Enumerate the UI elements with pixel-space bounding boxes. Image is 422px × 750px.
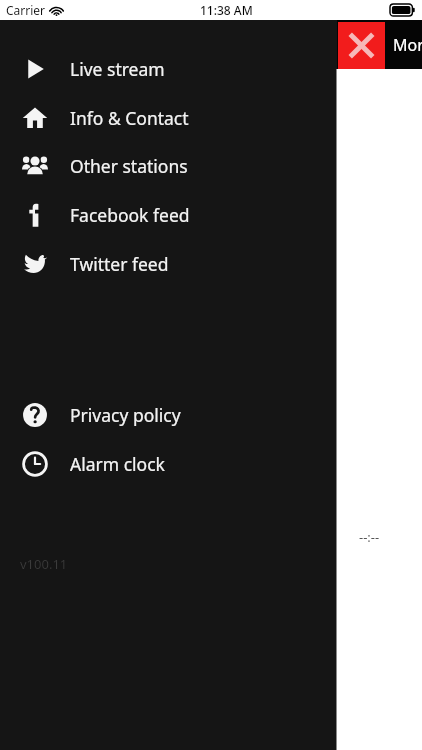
- button[interactable]: Close menu: [338, 22, 385, 69]
- staticText: Other stations: [70, 154, 188, 178]
- staticText: Mor: [393, 34, 422, 56]
- staticText: Privacy policy: [70, 403, 181, 427]
- staticText: --:--: [359, 528, 380, 546]
- button[interactable]: Privacy policy: [0, 397, 337, 433]
- button[interactable]: Facebook feed: [0, 197, 337, 233]
- staticText: v100.11: [20, 555, 68, 573]
- staticText: Alarm clock: [70, 452, 165, 476]
- button[interactable]: Live stream: [0, 51, 337, 87]
- staticText: Info & Contact: [70, 106, 189, 130]
- button[interactable]: Info & Contact: [0, 100, 337, 136]
- button[interactable]: Alarm clock: [0, 446, 337, 482]
- button[interactable]: Other stations: [0, 148, 337, 184]
- button[interactable]: Twitter feed: [0, 246, 337, 282]
- staticText: 11:38 AM: [200, 2, 253, 18]
- staticText: Facebook feed: [70, 203, 190, 227]
- staticText: Twitter feed: [70, 252, 169, 276]
- staticText: Carrier: [6, 2, 46, 18]
- staticText: Live stream: [70, 57, 165, 81]
